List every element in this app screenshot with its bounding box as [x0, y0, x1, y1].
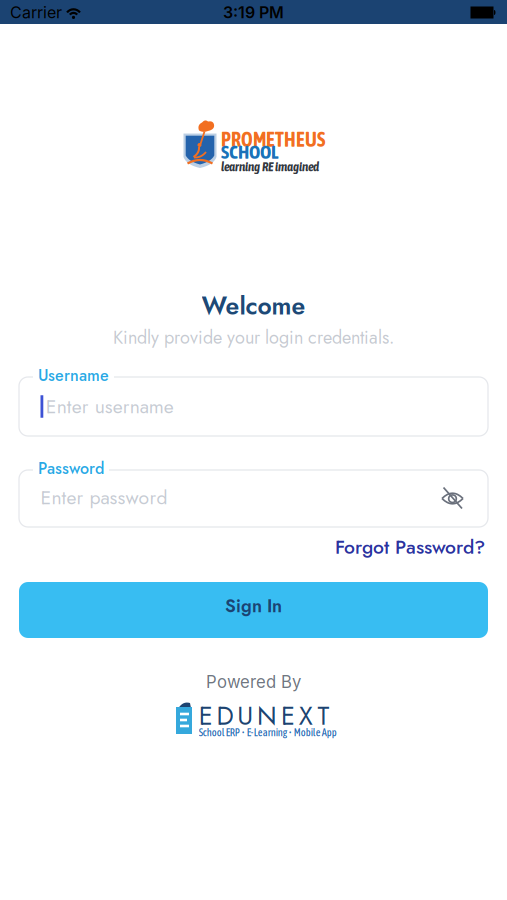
staticText: Password [38, 457, 104, 480]
staticText: Carrier [10, 3, 62, 22]
button[interactable]: Username [19, 377, 488, 436]
staticText: SCHOOL [221, 141, 278, 163]
staticText: Forgot Password? [335, 533, 485, 561]
staticText: Powered By [206, 672, 301, 692]
staticText: 3:19 PM [223, 3, 284, 22]
button[interactable]: Show password [440, 487, 464, 509]
staticText: Enter username [46, 392, 174, 420]
staticText: Enter password [40, 483, 167, 511]
staticText: Sign In [225, 593, 282, 619]
button[interactable]: Forgot Password? [335, 533, 485, 561]
staticText: School ERP • E-Learning • Mobile App [199, 726, 337, 738]
staticText: Username [38, 364, 109, 387]
staticText: Welcome [201, 288, 305, 324]
staticText: learning RE imagined [221, 159, 319, 174]
staticText: PROMETHEUS [221, 128, 325, 151]
staticText: Kindly provide your login credentials. [113, 324, 394, 350]
button[interactable]: Sign In [19, 582, 488, 638]
button[interactable]: Password [19, 470, 488, 527]
staticText: EDUNEXT [199, 698, 329, 734]
